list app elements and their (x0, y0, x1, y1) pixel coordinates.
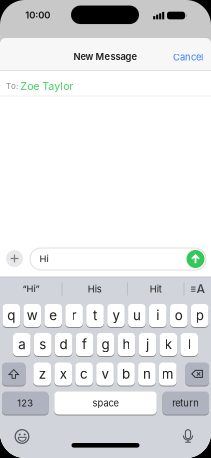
staticText: To: (6, 81, 18, 91)
staticText: t (93, 308, 97, 323)
button[interactable]: z (33, 362, 51, 385)
button[interactable]: c (75, 362, 93, 385)
button[interactable]: space (54, 391, 157, 414)
staticText: u (133, 308, 141, 323)
button[interactable]: Hit (150, 283, 162, 294)
button[interactable]: u (128, 304, 146, 327)
staticText: d (60, 337, 68, 352)
button[interactable]: k (159, 333, 177, 356)
button[interactable]: j (139, 333, 156, 356)
button[interactable]: return (162, 391, 209, 414)
button[interactable]: d (55, 333, 72, 356)
button[interactable]: i (149, 304, 167, 327)
staticText: Zoe Taylor (20, 80, 73, 92)
staticText: f (82, 337, 87, 352)
button[interactable]: Delete (185, 362, 209, 385)
staticText: 123 (17, 397, 33, 408)
button[interactable]: n (138, 362, 156, 385)
staticText: New Message (73, 51, 137, 62)
button[interactable]: q (2, 304, 20, 327)
button[interactable]: w (23, 304, 41, 327)
staticText: s (39, 337, 46, 352)
button[interactable]: e (44, 304, 62, 327)
staticText: A (196, 282, 205, 296)
staticText: return (172, 397, 199, 408)
staticText: l (188, 337, 191, 352)
button[interactable]: Cancel (173, 52, 203, 63)
staticText: g (101, 337, 109, 352)
button[interactable]: a (13, 333, 31, 356)
staticText: m (162, 366, 174, 382)
button[interactable]: r (65, 304, 83, 327)
staticText: c (80, 366, 88, 382)
button[interactable]: t (86, 304, 104, 327)
staticText: Hi (39, 253, 48, 264)
staticText: 10:00 (25, 9, 50, 20)
staticText: “Hi” (22, 283, 39, 294)
staticText: e (49, 308, 57, 323)
staticText: x (60, 366, 67, 382)
staticText: i (156, 308, 159, 323)
button[interactable]: Dictation (181, 429, 195, 443)
button[interactable]: 123 (2, 391, 48, 414)
button[interactable]: To: (0, 80, 211, 92)
staticText: His (88, 283, 102, 294)
button[interactable]: g (97, 333, 114, 356)
staticText: z (39, 366, 46, 382)
button[interactable]: v (96, 362, 114, 385)
staticText: n (143, 366, 151, 382)
staticText: Hit (150, 283, 162, 294)
staticText: p (196, 308, 204, 323)
staticText: q (7, 308, 15, 323)
staticText: o (175, 308, 183, 323)
button[interactable]: h (118, 333, 135, 356)
button[interactable]: b (117, 362, 135, 385)
staticText: v (101, 366, 108, 382)
button[interactable]: Apps (6, 250, 23, 267)
staticText: b (122, 366, 130, 382)
staticText: h (122, 337, 130, 352)
button[interactable]: “Hi” (22, 283, 39, 294)
button[interactable]: o (170, 304, 188, 327)
button[interactable]: Message (30, 248, 206, 270)
staticText: Cancel (173, 52, 203, 63)
button[interactable]: His (88, 283, 102, 294)
button[interactable]: l (180, 333, 198, 356)
staticText: y (112, 308, 119, 323)
button[interactable]: Shift (2, 362, 25, 385)
staticText: k (165, 337, 172, 352)
button[interactable]: Send (186, 250, 204, 268)
staticText: a (18, 337, 25, 352)
button[interactable]: x (54, 362, 72, 385)
button[interactable]: Prediction options (190, 283, 204, 294)
staticText: w (27, 308, 38, 323)
button[interactable]: s (34, 333, 51, 356)
button[interactable]: m (159, 362, 177, 385)
staticText: space (92, 397, 118, 408)
staticText: j (146, 337, 149, 352)
button[interactable]: y (107, 304, 125, 327)
button[interactable]: p (191, 304, 208, 327)
button[interactable]: Emoji (15, 429, 29, 443)
staticText: r (72, 308, 77, 323)
button[interactable]: f (76, 333, 93, 356)
